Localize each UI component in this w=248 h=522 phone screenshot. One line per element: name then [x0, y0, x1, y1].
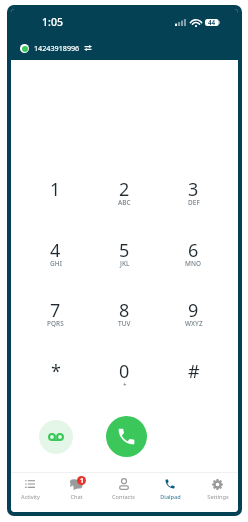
staticText: Activity: [21, 493, 40, 501]
staticText: 4: [50, 238, 61, 263]
button[interactable]: 8: [90, 285, 159, 339]
staticText: 1: [80, 476, 84, 485]
staticText: Dialpad: [160, 493, 181, 501]
staticText: +: [123, 380, 127, 389]
staticText: 44: [208, 18, 216, 27]
button[interactable]: #: [159, 346, 228, 400]
staticText: Settings: [207, 493, 229, 501]
button[interactable]: Voicemail: [39, 420, 73, 454]
staticText: 1:05: [42, 15, 64, 29]
staticText: 6: [188, 238, 199, 263]
staticText: TUV: [118, 319, 131, 328]
button[interactable]: Call: [106, 416, 147, 457]
staticText: 1: [50, 177, 61, 202]
staticText: 5: [119, 238, 130, 263]
staticText: 9: [188, 298, 199, 323]
button[interactable]: Swap line: [84, 45, 92, 51]
staticText: Contacts: [112, 493, 135, 501]
button[interactable]: 3: [159, 164, 228, 218]
staticText: PQRS: [47, 319, 64, 328]
staticText: MNO: [185, 259, 202, 268]
button[interactable]: 7: [21, 285, 90, 339]
staticText: #: [188, 359, 200, 384]
button[interactable]: 1: [53, 473, 100, 512]
staticText: 8: [119, 298, 130, 323]
staticText: *: [51, 359, 61, 384]
staticText: GHI: [50, 259, 62, 268]
staticText: 0: [119, 359, 130, 384]
button[interactable]: 6: [159, 225, 228, 279]
staticText: 3: [188, 177, 199, 202]
button[interactable]: 5: [90, 225, 159, 279]
button[interactable]: Activity: [11, 473, 53, 512]
button[interactable]: Settings: [194, 473, 238, 512]
staticText: 2: [119, 177, 130, 202]
staticText: ABC: [118, 198, 131, 207]
button[interactable]: Contacts: [100, 473, 147, 512]
button[interactable]: 2: [90, 164, 159, 218]
staticText: DEF: [188, 198, 200, 207]
staticText: 14243918996: [34, 43, 80, 53]
button[interactable]: Dialpad: [147, 473, 194, 512]
staticText: 7: [50, 298, 61, 323]
staticText: Chat: [70, 493, 83, 501]
button[interactable]: 9: [159, 285, 228, 339]
button[interactable]: *: [21, 346, 90, 400]
button[interactable]: 4: [21, 225, 90, 279]
staticText: JKL: [120, 259, 130, 268]
staticText: WXYZ: [185, 319, 203, 328]
button[interactable]: 1: [21, 164, 90, 218]
button[interactable]: 0: [90, 346, 159, 400]
